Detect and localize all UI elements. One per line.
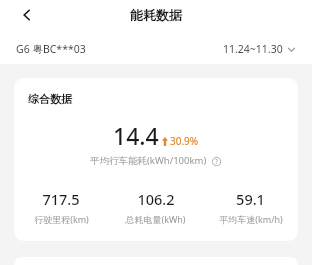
staticText: G6 粤BC***03: [16, 42, 86, 56]
staticText: 30.9%: [170, 134, 199, 148]
staticText: 能耗数据: [130, 7, 182, 23]
staticText: 行驶里程(km): [34, 213, 89, 225]
staticText: 总耗电量(kWh): [125, 213, 186, 225]
button[interactable]: Back: [14, 2, 40, 28]
staticText: 717.5: [42, 189, 80, 209]
staticText: 平均行车能耗(kWh/100km): [90, 154, 207, 167]
staticText: ?: [215, 157, 218, 166]
staticText: 59.1: [236, 189, 265, 209]
button[interactable]: 717.5: [14, 189, 108, 225]
staticText: 14.4: [113, 120, 159, 151]
staticText: 平均车速(km/h): [219, 213, 283, 225]
button[interactable]: 11.24~11.30: [221, 40, 298, 58]
button[interactable]: 59.1: [203, 189, 298, 225]
staticText: 106.2: [137, 189, 175, 209]
staticText: 11.24~11.30: [223, 42, 283, 56]
staticText: 综合数据: [28, 92, 72, 106]
button[interactable]: 106.2: [108, 189, 203, 225]
button[interactable]: Info: [210, 155, 222, 167]
